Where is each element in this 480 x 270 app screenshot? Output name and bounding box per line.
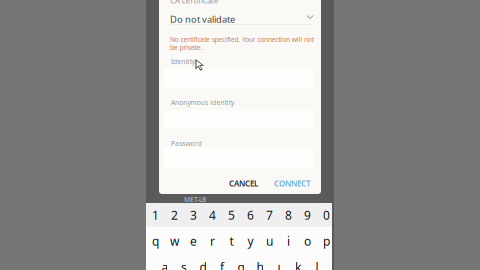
staticText: h bbox=[256, 259, 263, 270]
staticText: 7 bbox=[266, 207, 273, 223]
staticText: r bbox=[210, 233, 215, 249]
staticText: 5 bbox=[228, 207, 235, 223]
button[interactable]: 2 bbox=[165, 204, 184, 226]
staticText: j bbox=[277, 259, 280, 270]
button[interactable]: s bbox=[174, 256, 193, 270]
button[interactable]: Password bbox=[0, 0, 480, 270]
staticText: y bbox=[247, 233, 253, 249]
staticText: 6 bbox=[247, 207, 254, 223]
staticText: 0 bbox=[323, 207, 330, 223]
staticText: 9 bbox=[304, 207, 311, 223]
staticText: p bbox=[323, 233, 330, 249]
button[interactable]: t bbox=[222, 230, 241, 252]
staticText: i bbox=[287, 233, 290, 249]
staticText: Anonymous identity bbox=[171, 98, 234, 107]
button[interactable]: CANCEL bbox=[0, 0, 480, 270]
button[interactable]: f bbox=[212, 256, 231, 270]
staticText: g bbox=[237, 259, 244, 270]
staticText: k bbox=[295, 259, 301, 270]
staticText: CANCEL bbox=[229, 178, 258, 189]
button[interactable]: q bbox=[146, 230, 165, 252]
staticText: o bbox=[304, 233, 311, 249]
staticText: Identity bbox=[171, 57, 195, 66]
button[interactable]: i bbox=[279, 230, 298, 252]
staticText: w bbox=[170, 233, 179, 249]
button[interactable]: e bbox=[184, 230, 203, 252]
button[interactable]: 1 bbox=[146, 204, 165, 226]
button[interactable]: p bbox=[317, 230, 336, 252]
button[interactable]: 8 bbox=[279, 204, 298, 226]
staticText: 4 bbox=[209, 207, 216, 223]
button[interactable]: r bbox=[203, 230, 222, 252]
button[interactable]: g bbox=[231, 256, 250, 270]
staticText: d bbox=[199, 259, 206, 270]
staticText: 8 bbox=[285, 207, 292, 223]
staticText: 2 bbox=[171, 207, 178, 223]
button[interactable]: u bbox=[260, 230, 279, 252]
staticText: Password bbox=[171, 139, 202, 148]
button[interactable]: CONNECT bbox=[0, 0, 480, 270]
button[interactable]: 3 bbox=[184, 204, 203, 226]
staticText: a bbox=[161, 259, 168, 270]
button[interactable]: CA certificate: Do not validate bbox=[0, 0, 480, 270]
button[interactable]: d bbox=[193, 256, 212, 270]
staticText: l bbox=[315, 259, 318, 270]
button[interactable]: 4 bbox=[203, 204, 222, 226]
button[interactable]: l bbox=[307, 256, 326, 270]
button[interactable]: w bbox=[165, 230, 184, 252]
button[interactable]: Anonymous identity bbox=[0, 0, 480, 270]
staticText: f bbox=[220, 259, 224, 270]
staticText: 3 bbox=[190, 207, 197, 223]
staticText: be private. bbox=[170, 43, 202, 52]
button[interactable]: k bbox=[288, 256, 307, 270]
staticText: t bbox=[229, 233, 233, 249]
button[interactable]: 7 bbox=[260, 204, 279, 226]
button[interactable]: j bbox=[269, 256, 288, 270]
staticText: CA certificate bbox=[170, 0, 219, 6]
staticText: Do not validate bbox=[170, 13, 235, 25]
button[interactable]: 6 bbox=[241, 204, 260, 226]
button[interactable]: 5 bbox=[222, 204, 241, 226]
button[interactable]: y bbox=[241, 230, 260, 252]
staticText: 1 bbox=[152, 207, 159, 223]
staticText: u bbox=[266, 233, 273, 249]
button[interactable]: 9 bbox=[298, 204, 317, 226]
staticText: q bbox=[152, 233, 159, 249]
staticText: No certificate specified. Your connectio… bbox=[170, 35, 314, 44]
button[interactable]: o bbox=[298, 230, 317, 252]
button[interactable]: h bbox=[250, 256, 269, 270]
staticText: s bbox=[181, 259, 187, 270]
staticText: CONNECT bbox=[274, 178, 311, 189]
button[interactable]: Identity bbox=[0, 0, 480, 270]
staticText: e bbox=[190, 233, 197, 249]
staticText: MET-LB bbox=[184, 195, 206, 204]
button[interactable]: 0 bbox=[317, 204, 336, 226]
button[interactable]: a bbox=[155, 256, 174, 270]
